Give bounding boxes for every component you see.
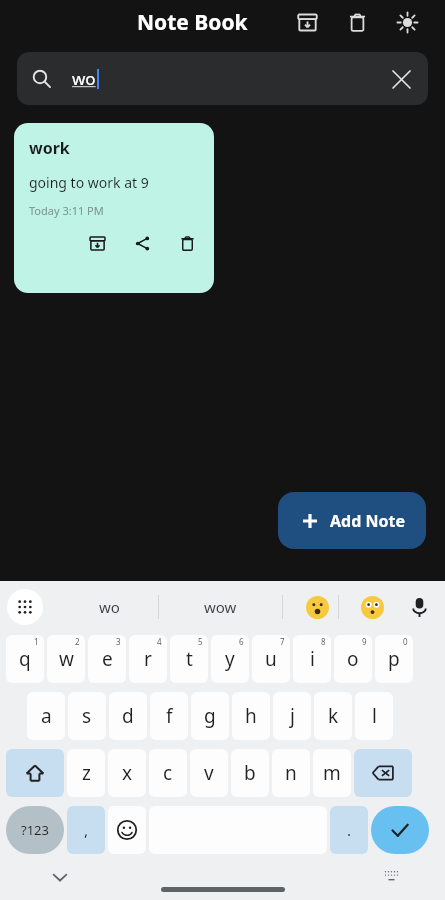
- button[interactable]: p: [375, 635, 413, 683]
- staticText: ,: [84, 820, 89, 840]
- button[interactable]: Shift: [6, 749, 64, 797]
- button[interactable]: m: [313, 749, 351, 797]
- staticText: j: [290, 703, 295, 729]
- staticText: q: [19, 646, 31, 672]
- button[interactable]: t: [170, 635, 208, 683]
- button[interactable]: Add Note: [278, 492, 426, 549]
- staticText: Add Note: [330, 510, 405, 532]
- staticText: 7: [280, 636, 285, 647]
- staticText: 8: [321, 636, 326, 647]
- button[interactable]: More options: [7, 589, 43, 625]
- staticText: t: [186, 646, 193, 672]
- button[interactable]: e: [88, 635, 126, 683]
- staticText: s: [82, 703, 92, 729]
- staticText: b: [244, 760, 256, 786]
- staticText: p: [388, 646, 400, 672]
- button[interactable]: wow: [192, 581, 248, 633]
- button[interactable]: c: [149, 749, 187, 797]
- button[interactable]: u: [252, 635, 290, 683]
- staticText: z: [82, 760, 91, 786]
- button[interactable]: Archive note: [84, 230, 110, 256]
- button[interactable]: Hide keyboard: [44, 861, 76, 893]
- staticText: .: [347, 820, 352, 840]
- button[interactable]: l: [355, 692, 393, 740]
- staticText: 0: [403, 636, 408, 647]
- staticText: n: [285, 760, 297, 786]
- staticText: 6: [239, 636, 244, 647]
- button[interactable]: n: [272, 749, 310, 797]
- button[interactable]: x: [108, 749, 146, 797]
- button[interactable]: Share note: [129, 230, 155, 256]
- button[interactable]: a: [27, 692, 65, 740]
- staticText: m: [323, 760, 341, 786]
- button[interactable]: Emoji suggestion: [300, 590, 334, 624]
- staticText: 2: [75, 636, 80, 647]
- staticText: k: [328, 703, 339, 729]
- staticText: ?123: [21, 821, 49, 839]
- button[interactable]: .: [330, 806, 368, 854]
- staticText: r: [144, 646, 152, 672]
- button[interactable]: Switch keyboard: [377, 861, 405, 889]
- staticText: x: [122, 760, 133, 786]
- button[interactable]: Emoji: [108, 806, 146, 854]
- staticText: 4: [157, 636, 162, 647]
- staticText: 9: [362, 636, 367, 647]
- staticText: a: [41, 703, 52, 729]
- button[interactable]: b: [231, 749, 269, 797]
- staticText: v: [204, 760, 214, 786]
- button[interactable]: wo: [17, 52, 428, 105]
- button[interactable]: v: [190, 749, 228, 797]
- button[interactable]: k: [314, 692, 352, 740]
- staticText: w: [59, 646, 74, 672]
- button[interactable]: w: [47, 635, 85, 683]
- staticText: wow: [204, 597, 237, 617]
- button[interactable]: f: [150, 692, 188, 740]
- staticText: 5: [198, 636, 203, 647]
- staticText: Note Book: [137, 8, 248, 37]
- staticText: y: [225, 646, 235, 672]
- staticText: 3: [116, 636, 121, 647]
- button[interactable]: Clear search: [386, 64, 416, 94]
- button[interactable]: i: [293, 635, 331, 683]
- button[interactable]: Delete: [342, 7, 372, 37]
- staticText: l: [372, 703, 377, 729]
- staticText: e: [102, 646, 113, 672]
- staticText: g: [204, 703, 216, 729]
- staticText: 1: [34, 636, 39, 647]
- staticText: going to work at 9: [29, 173, 149, 192]
- button[interactable]: Archive: [292, 7, 322, 37]
- button[interactable]: ?123: [6, 806, 64, 854]
- button[interactable]: y: [211, 635, 249, 683]
- staticText: wo: [72, 67, 96, 90]
- staticText: i: [310, 646, 315, 672]
- button[interactable]: Toggle theme: [392, 7, 422, 37]
- staticText: f: [166, 703, 173, 729]
- staticText: wo: [99, 597, 120, 617]
- staticText: u: [265, 646, 277, 672]
- staticText: Today 3:11 PM: [29, 203, 104, 218]
- staticText: c: [163, 760, 173, 786]
- button[interactable]: h: [232, 692, 270, 740]
- button[interactable]: work: [14, 123, 214, 293]
- button[interactable]: g: [191, 692, 229, 740]
- button[interactable]: r: [129, 635, 167, 683]
- button[interactable]: Backspace: [354, 749, 412, 797]
- button[interactable]: Emoji suggestion: [355, 590, 389, 624]
- button[interactable]: Delete note: [174, 230, 200, 256]
- button[interactable]: s: [68, 692, 106, 740]
- staticText: d: [122, 703, 134, 729]
- button[interactable]: wo: [82, 581, 137, 633]
- button[interactable]: ,: [67, 806, 105, 854]
- staticText: work: [29, 137, 70, 159]
- button[interactable]: j: [273, 692, 311, 740]
- staticText: h: [245, 703, 257, 729]
- button[interactable]: z: [67, 749, 105, 797]
- button[interactable]: d: [109, 692, 147, 740]
- button[interactable]: Enter: [371, 806, 429, 854]
- staticText: o: [347, 646, 359, 672]
- button[interactable]: Voice input: [402, 590, 436, 624]
- button[interactable]: o: [334, 635, 372, 683]
- button[interactable]: q: [6, 635, 44, 683]
